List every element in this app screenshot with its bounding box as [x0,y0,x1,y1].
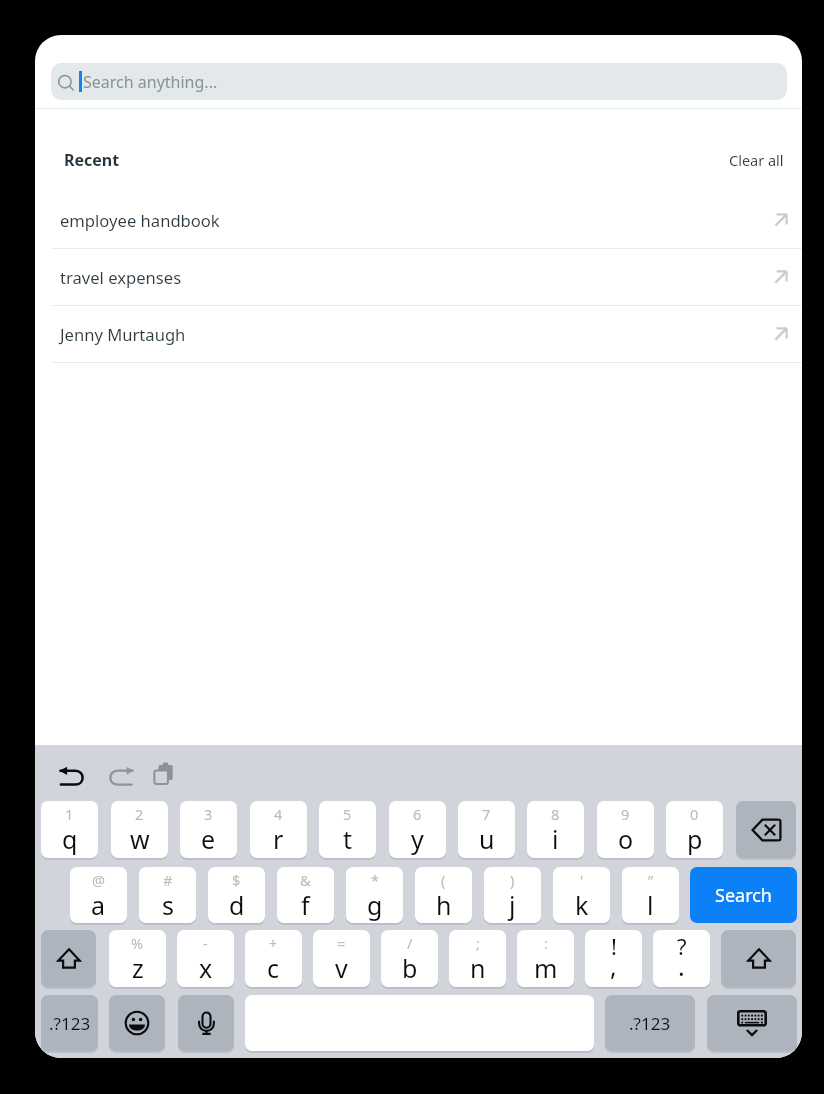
button[interactable]: @ [70,867,127,923]
button[interactable]: / [381,930,438,987]
staticText: f [301,888,310,922]
button[interactable]: ( [415,867,472,923]
staticText: s [162,888,174,922]
button[interactable]: travel expenses [35,249,802,305]
staticText: ) [510,870,515,890]
staticText: 0 [690,804,699,824]
staticText: Jenny Murtaugh [60,323,186,346]
button[interactable]: 9 [597,801,654,858]
staticText: @ [92,870,106,890]
button[interactable]: # [139,867,196,923]
button[interactable]: Backspace [736,801,796,858]
button[interactable]: 1 [41,801,98,858]
button[interactable]: ? [653,930,710,987]
button[interactable]: Emoji [109,995,165,1051]
button[interactable]: ' [553,867,610,923]
staticText: w [130,822,150,856]
button[interactable]: Shift [721,930,796,987]
staticText: ? [677,931,687,961]
staticText: Recent [64,149,120,171]
staticText: 9 [621,804,630,824]
staticText: 5 [343,804,352,824]
button[interactable]: = [313,930,370,987]
staticText: u [479,822,495,856]
staticText: 6 [413,804,422,824]
button[interactable]: Voice input [178,995,234,1051]
staticText: + [269,933,278,953]
staticText: Search anything... [83,71,218,93]
staticText: ' [580,870,584,890]
staticText: k [575,888,589,922]
button[interactable]: Hide keyboard [707,995,797,1051]
button[interactable]: 3 [180,801,237,858]
button[interactable]: & [277,867,334,923]
staticText: = [337,933,346,953]
staticText: p [687,822,703,856]
button[interactable]: ; [449,930,506,987]
staticText: employee handbook [60,209,220,232]
button[interactable]: Shift [41,930,96,987]
staticText: q [62,822,78,856]
button[interactable]: 6 [389,801,446,858]
staticText: c [267,951,280,985]
button[interactable]: Symbols [605,995,695,1051]
staticText: & [300,870,311,890]
button[interactable]: 5 [319,801,376,858]
button[interactable]: : [517,930,574,987]
staticText: travel expenses [60,266,182,289]
button[interactable]: 4 [250,801,307,858]
button[interactable]: % [109,930,166,987]
button[interactable]: $ [208,867,265,923]
staticText: ; [476,933,480,953]
staticText: . [678,949,685,983]
button[interactable]: Symbols [41,995,98,1051]
staticText: o [618,822,634,856]
button[interactable]: ) [484,867,541,923]
staticText: e [201,822,216,856]
button[interactable]: + [245,930,302,987]
button[interactable]: Search anything... [51,63,787,100]
staticText: .?123 [629,1012,671,1035]
button[interactable]: 7 [458,801,515,858]
staticText: b [402,951,418,985]
staticText: # [163,870,173,890]
button[interactable]: Undo [55,760,91,796]
staticText: - [203,933,208,953]
staticText: 4 [274,804,283,824]
staticText: * [371,870,379,890]
staticText: Clear all [729,150,784,170]
staticText: % [131,933,144,953]
button[interactable]: * [346,867,403,923]
button[interactable]: Clipboard [148,760,184,796]
button[interactable]: Redo [102,760,138,796]
staticText: v [335,951,348,985]
staticText: $ [232,870,241,890]
staticText: ! [611,931,617,961]
staticText: .?123 [49,1012,91,1035]
staticText: t [343,822,353,856]
button[interactable]: 8 [527,801,584,858]
staticText: j [509,888,516,922]
button[interactable]: Clear all [729,150,784,170]
staticText: / [407,933,413,953]
button[interactable]: 0 [666,801,723,858]
staticText: n [470,951,486,985]
staticText: z [132,951,144,985]
staticText: ” [648,870,654,890]
button[interactable]: Search [690,867,797,923]
staticText: g [367,888,383,922]
staticText: 1 [65,804,74,824]
staticText: a [91,888,106,922]
staticText: y [411,822,424,856]
staticText: Search [715,883,772,908]
button[interactable]: employee handbook [35,192,802,248]
button[interactable]: ” [622,867,679,923]
staticText: 7 [482,804,491,824]
button[interactable]: 2 [111,801,168,858]
staticText: ( [441,870,446,890]
button[interactable]: Jenny Murtaugh [35,306,802,362]
button[interactable]: ! [585,930,642,987]
button[interactable]: - [177,930,234,987]
staticText: i [552,822,559,856]
